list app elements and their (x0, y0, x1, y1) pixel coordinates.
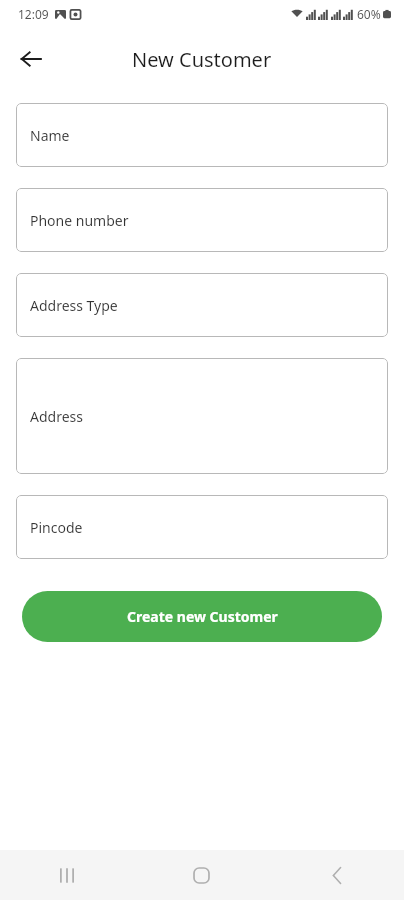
button[interactable]: Home (134, 850, 269, 900)
button[interactable]: Address Type (16, 273, 388, 337)
button[interactable]: Phone number (16, 188, 388, 252)
staticText: Phone number (30, 211, 129, 230)
staticText: Name (30, 126, 70, 145)
staticText: Address (30, 407, 83, 426)
button[interactable]: Recents (0, 850, 134, 900)
button[interactable]: Name (16, 103, 388, 167)
staticText: Create new Customer (127, 607, 278, 626)
staticText: 60% (357, 6, 381, 22)
button[interactable]: Address (16, 358, 388, 474)
staticText: Pincode (30, 518, 83, 537)
staticText: Address Type (30, 296, 118, 315)
staticText: 12:09 (18, 6, 49, 22)
button[interactable]: Back (269, 850, 404, 900)
button[interactable]: Back (10, 38, 52, 80)
button[interactable]: Pincode (16, 495, 388, 559)
staticText: New Customer (132, 46, 272, 73)
button[interactable]: Create new Customer (22, 591, 382, 642)
